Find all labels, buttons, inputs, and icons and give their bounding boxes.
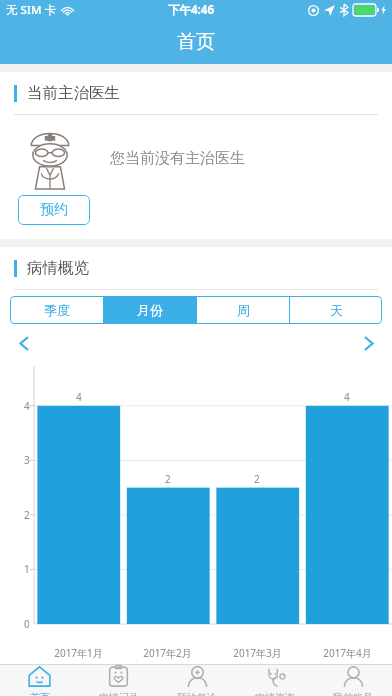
staticText: 下午4:46	[168, 2, 214, 18]
staticText: 2	[165, 472, 171, 486]
button[interactable]: 预约复诊	[158, 665, 236, 696]
staticText: 当前主治医生	[27, 83, 120, 103]
staticText: 您当前没有主治医生	[110, 149, 245, 168]
staticText: 0	[24, 617, 30, 631]
staticText: 病情咨询	[255, 691, 295, 696]
staticText: 2017年1月	[54, 646, 103, 660]
staticText: 病情记录	[99, 691, 139, 696]
staticText: 月份	[137, 302, 163, 318]
staticText: 2017年4月	[323, 646, 372, 660]
staticText: 2	[24, 508, 30, 522]
staticText: 预约	[40, 201, 68, 219]
staticText: 预约复诊	[177, 691, 217, 696]
staticText: 3	[24, 453, 30, 467]
button[interactable]: 季度	[10, 296, 103, 324]
staticText: 首页	[30, 691, 50, 696]
button[interactable]: 病情咨询	[236, 665, 314, 696]
staticText: 周	[237, 302, 250, 318]
button[interactable]: 首页	[0, 665, 79, 696]
staticText: 4	[24, 399, 30, 413]
staticText: 天	[330, 302, 343, 318]
staticText: 2	[254, 472, 260, 486]
button[interactable]: 我的账号	[314, 665, 392, 696]
staticText: 我的账号	[333, 691, 373, 696]
staticText: 4	[76, 390, 82, 404]
button[interactable]: 下一页	[358, 333, 378, 353]
staticText: 无 SIM 卡	[6, 2, 56, 18]
staticText: 4	[344, 390, 350, 404]
button[interactable]: 月份	[104, 296, 196, 324]
button[interactable]: 预约	[18, 195, 90, 225]
button[interactable]: 天	[290, 296, 382, 324]
staticText: 1	[24, 562, 30, 576]
staticText: 2017年3月	[233, 646, 282, 660]
button[interactable]: 病情记录	[79, 665, 158, 696]
staticText: 病情概览	[27, 258, 89, 278]
button[interactable]: 上一页	[14, 333, 34, 353]
staticText: 首页	[177, 30, 215, 54]
staticText: 2017年2月	[143, 646, 192, 660]
button[interactable]: 周	[197, 296, 289, 324]
staticText: 季度	[44, 302, 70, 318]
